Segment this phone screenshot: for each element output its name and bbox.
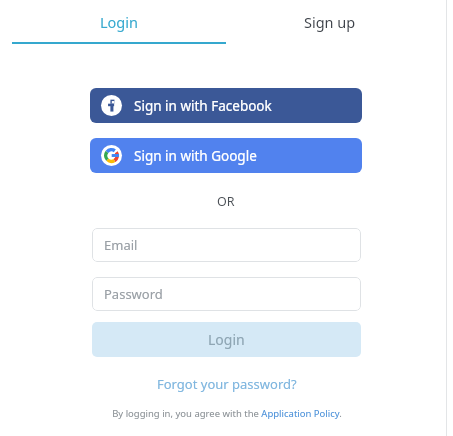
staticText: By logging in, you agree with the Applic… (112, 407, 342, 420)
other: Google logo (101, 145, 122, 166)
staticText: Email (104, 236, 138, 254)
button[interactable]: Login (12, 0, 226, 43)
button[interactable]: Login (92, 322, 361, 357)
staticText: Sign in with Google (134, 147, 257, 165)
button[interactable]: Email (92, 228, 361, 262)
staticText: Password (104, 285, 163, 303)
button[interactable]: Sign up (240, 0, 420, 43)
button[interactable]: Google logo (90, 138, 362, 173)
staticText: Sign up (304, 12, 356, 32)
other: Facebook logo (101, 95, 122, 116)
staticText: Login (208, 330, 245, 349)
button[interactable]: Facebook logo (90, 88, 362, 123)
staticText: Forgot your password? (157, 375, 297, 393)
staticText: Login (100, 12, 138, 32)
staticText: Sign in with Facebook (134, 97, 272, 115)
button[interactable]: Forgot your password? (92, 373, 361, 395)
button[interactable]: Password (92, 277, 361, 311)
staticText: OR (217, 193, 235, 210)
